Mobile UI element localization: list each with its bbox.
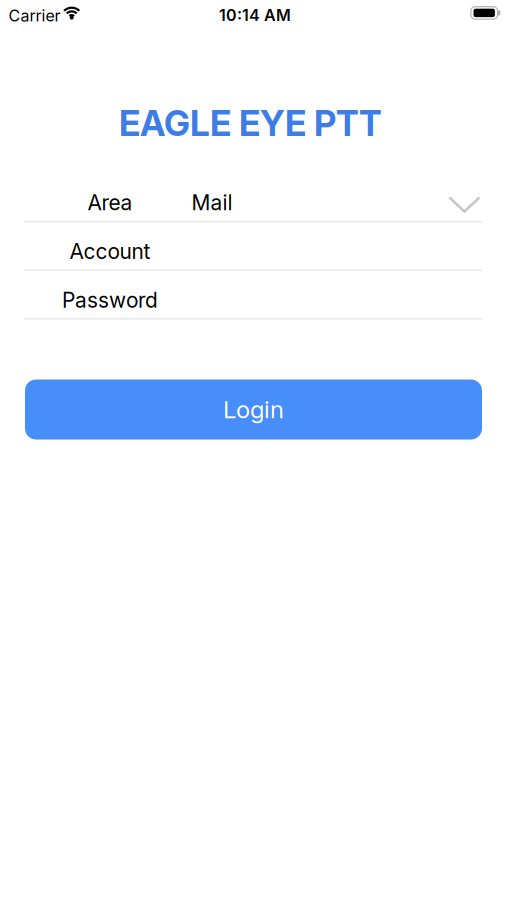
staticText: Carrier bbox=[8, 6, 60, 25]
staticText: Login bbox=[223, 395, 284, 424]
staticText: 10:14 AM bbox=[219, 6, 291, 25]
staticText: EAGLE EYE PTT bbox=[119, 102, 382, 144]
button[interactable]: Login bbox=[25, 379, 482, 439]
staticText: Area bbox=[87, 190, 132, 215]
button[interactable]: Area bbox=[24, 172, 482, 220]
button[interactable]: Account bbox=[24, 221, 482, 269]
button[interactable]: Password bbox=[24, 270, 482, 317]
staticText: Password bbox=[62, 287, 158, 313]
staticText: Mail bbox=[191, 190, 232, 215]
staticText: Account bbox=[69, 239, 150, 264]
